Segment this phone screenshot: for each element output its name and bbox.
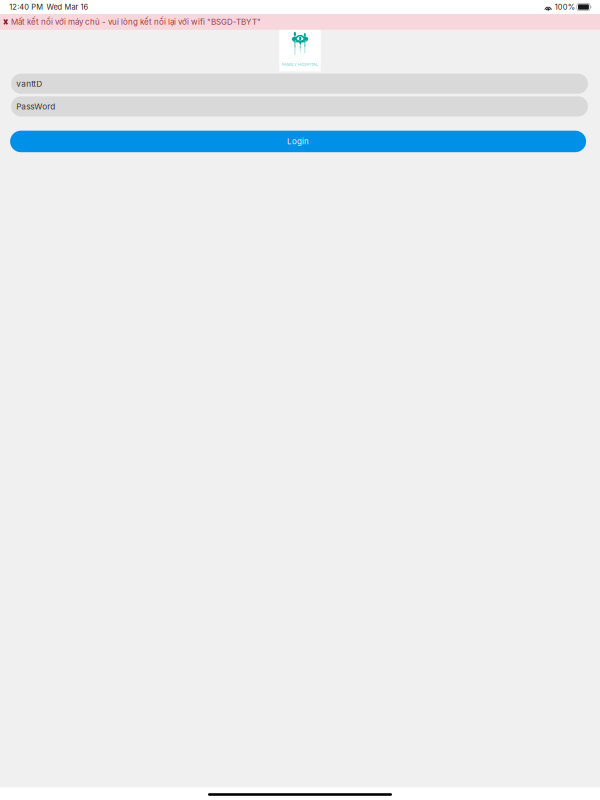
staticText: FAMILY HOSPITAL <box>282 62 318 67</box>
button[interactable]: vanttD <box>11 74 588 94</box>
staticText: PassWord <box>16 101 55 111</box>
staticText: vanttD <box>16 79 42 89</box>
button[interactable]: Login <box>10 131 586 152</box>
staticText: 12:40 PM <box>9 2 43 11</box>
staticText: Mất kết nối với máy chủ - vui lòng kết n… <box>11 17 261 27</box>
staticText: 100% <box>555 2 575 11</box>
staticText: Login <box>287 137 309 146</box>
staticText: Wed Mar 16 <box>47 2 89 11</box>
button[interactable]: PassWord <box>11 96 588 116</box>
